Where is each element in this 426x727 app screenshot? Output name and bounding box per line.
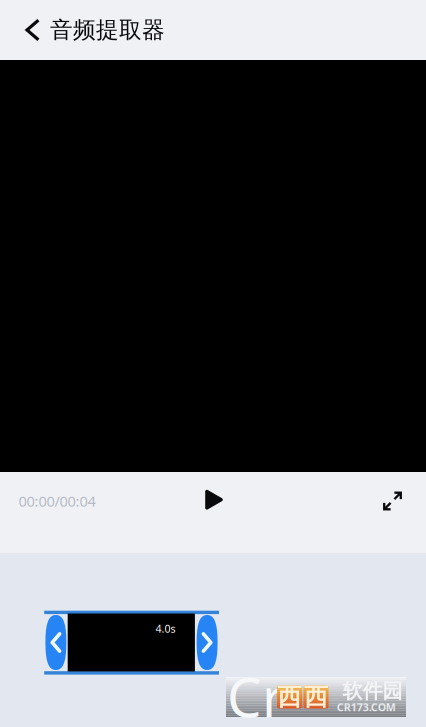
button[interactable]: 音频提取器 (0, 0, 230, 60)
button[interactable]: Play (192, 478, 236, 522)
staticText: CR173.COM (337, 700, 396, 714)
button[interactable]: Trim start (45, 615, 66, 670)
button[interactable]: Trim end (197, 615, 218, 670)
staticText: 西 (277, 682, 301, 712)
staticText: Cr (227, 660, 285, 727)
staticText: 00:00/00:04 (18, 491, 95, 511)
staticText: 软件园 (342, 679, 402, 703)
staticText: 音频提取器 (50, 16, 165, 44)
staticText: 西 (304, 682, 328, 712)
button[interactable]: Full screen (370, 479, 414, 523)
staticText: 4.0s (155, 621, 175, 636)
